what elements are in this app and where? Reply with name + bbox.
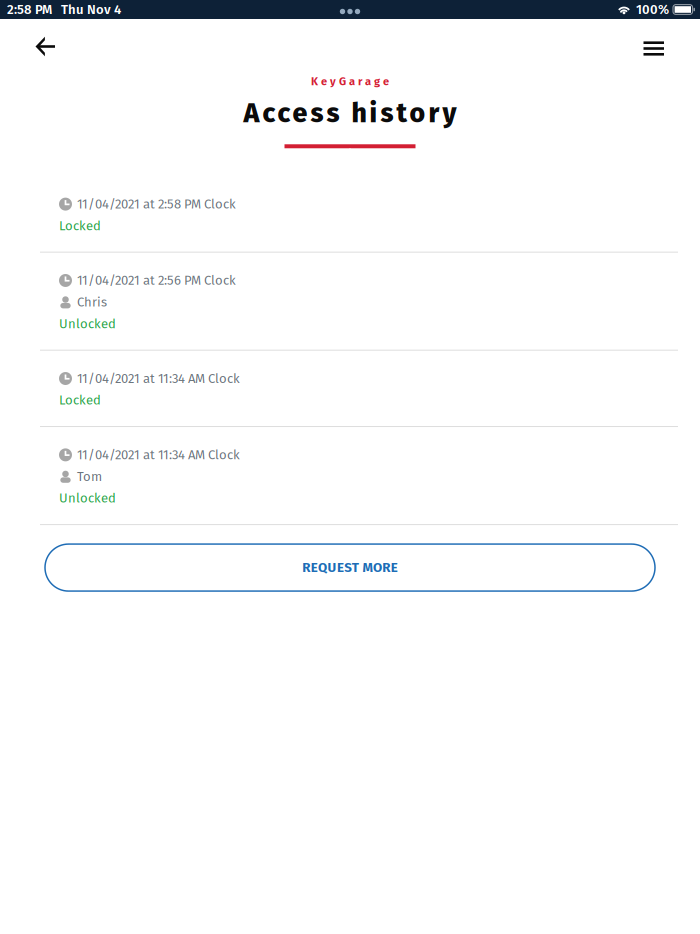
staticText: Thu Nov 4 [61, 2, 121, 17]
staticText: 100% [636, 2, 669, 17]
button[interactable]: 11/04/2021 at 2:58 PM Clock [0, 176, 700, 252]
staticText: 11/04/2021 at 11:34 AM Clock [77, 447, 240, 463]
button[interactable]: 11/04/2021 at 11:34 AM Clock [0, 427, 700, 524]
staticText: Access history [243, 97, 456, 129]
staticText: Chris [77, 294, 107, 310]
staticText: Locked [59, 218, 101, 234]
button[interactable]: 11/04/2021 at 11:34 AM Clock [0, 351, 700, 426]
staticText: Tom [77, 469, 102, 484]
button[interactable]: Menu [629, 19, 700, 65]
staticText: KeyGarage [311, 75, 389, 88]
button[interactable]: 11/04/2021 at 2:56 PM Clock [0, 253, 700, 350]
staticText: 11/04/2021 at 11:34 AM Clock [77, 371, 240, 386]
staticText: 11/04/2021 at 2:56 PM Clock [77, 273, 236, 288]
staticText: Unlocked [59, 490, 116, 506]
button[interactable]: REQUEST MORE [45, 544, 655, 591]
staticText: Locked [59, 392, 101, 408]
staticText: 11/04/2021 at 2:58 PM Clock [77, 196, 236, 212]
button[interactable]: Back [0, 19, 69, 65]
staticText: Unlocked [59, 316, 116, 332]
staticText: REQUEST MORE [302, 560, 398, 576]
staticText: 2:58 PM [7, 2, 52, 17]
